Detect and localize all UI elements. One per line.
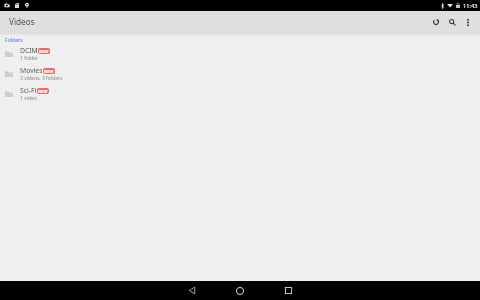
staticText: 3 videos, 3 folders [20, 75, 63, 82]
button[interactable]: Back [184, 281, 200, 300]
staticText: Videos [9, 16, 35, 27]
button[interactable]: Home [232, 281, 248, 300]
staticText: 1 folder [20, 55, 39, 62]
button[interactable]: Sci-Fi [0, 84, 480, 104]
button[interactable]: Recents [280, 281, 296, 300]
button[interactable]: DCIM [0, 44, 480, 64]
staticText: NEW [44, 69, 54, 74]
staticText: 11:43 [463, 2, 478, 10]
button[interactable]: Search [443, 11, 460, 33]
button[interactable]: Movies [0, 64, 480, 84]
staticText: Movies [20, 66, 43, 75]
staticText: Sci-Fi [20, 86, 37, 95]
staticText: NEW [39, 49, 49, 54]
button[interactable]: More options [460, 11, 477, 33]
staticText: DCIM [20, 46, 38, 55]
staticText: NEW [38, 89, 48, 94]
staticText: 1 video [20, 95, 37, 102]
button[interactable]: Refresh [426, 11, 443, 33]
staticText: Folders [5, 37, 23, 44]
